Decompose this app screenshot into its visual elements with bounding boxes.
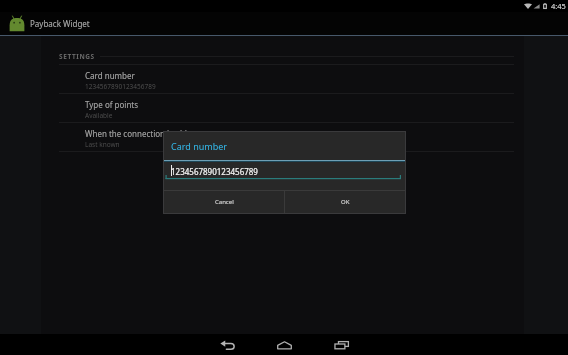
staticText: OK [341,198,350,206]
button[interactable]: Home [256,334,313,355]
staticText: When the connection is old [85,128,187,139]
staticText: Card number [85,70,135,81]
button[interactable]: Cancel [164,191,284,213]
staticText: 4:45 [551,1,566,11]
button[interactable]: OK [285,191,405,213]
staticText: Payback Widget [30,18,90,29]
staticText: Type of points [85,99,139,110]
staticText: Last known [85,140,120,149]
staticText: Card number [171,140,228,152]
staticText: 1234567890123456789 [171,166,258,177]
button[interactable]: Type of points [41,94,524,122]
button[interactable]: When the connection is old [41,123,524,151]
staticText: SETTINGS [59,52,95,61]
button[interactable]: Back [199,334,256,355]
button[interactable]: Card number [41,65,524,93]
staticText: Cancel [215,198,234,206]
staticText: Available [85,111,113,120]
button[interactable]: Recent apps [313,334,370,355]
staticText: 1234567890123456789 [85,82,156,91]
